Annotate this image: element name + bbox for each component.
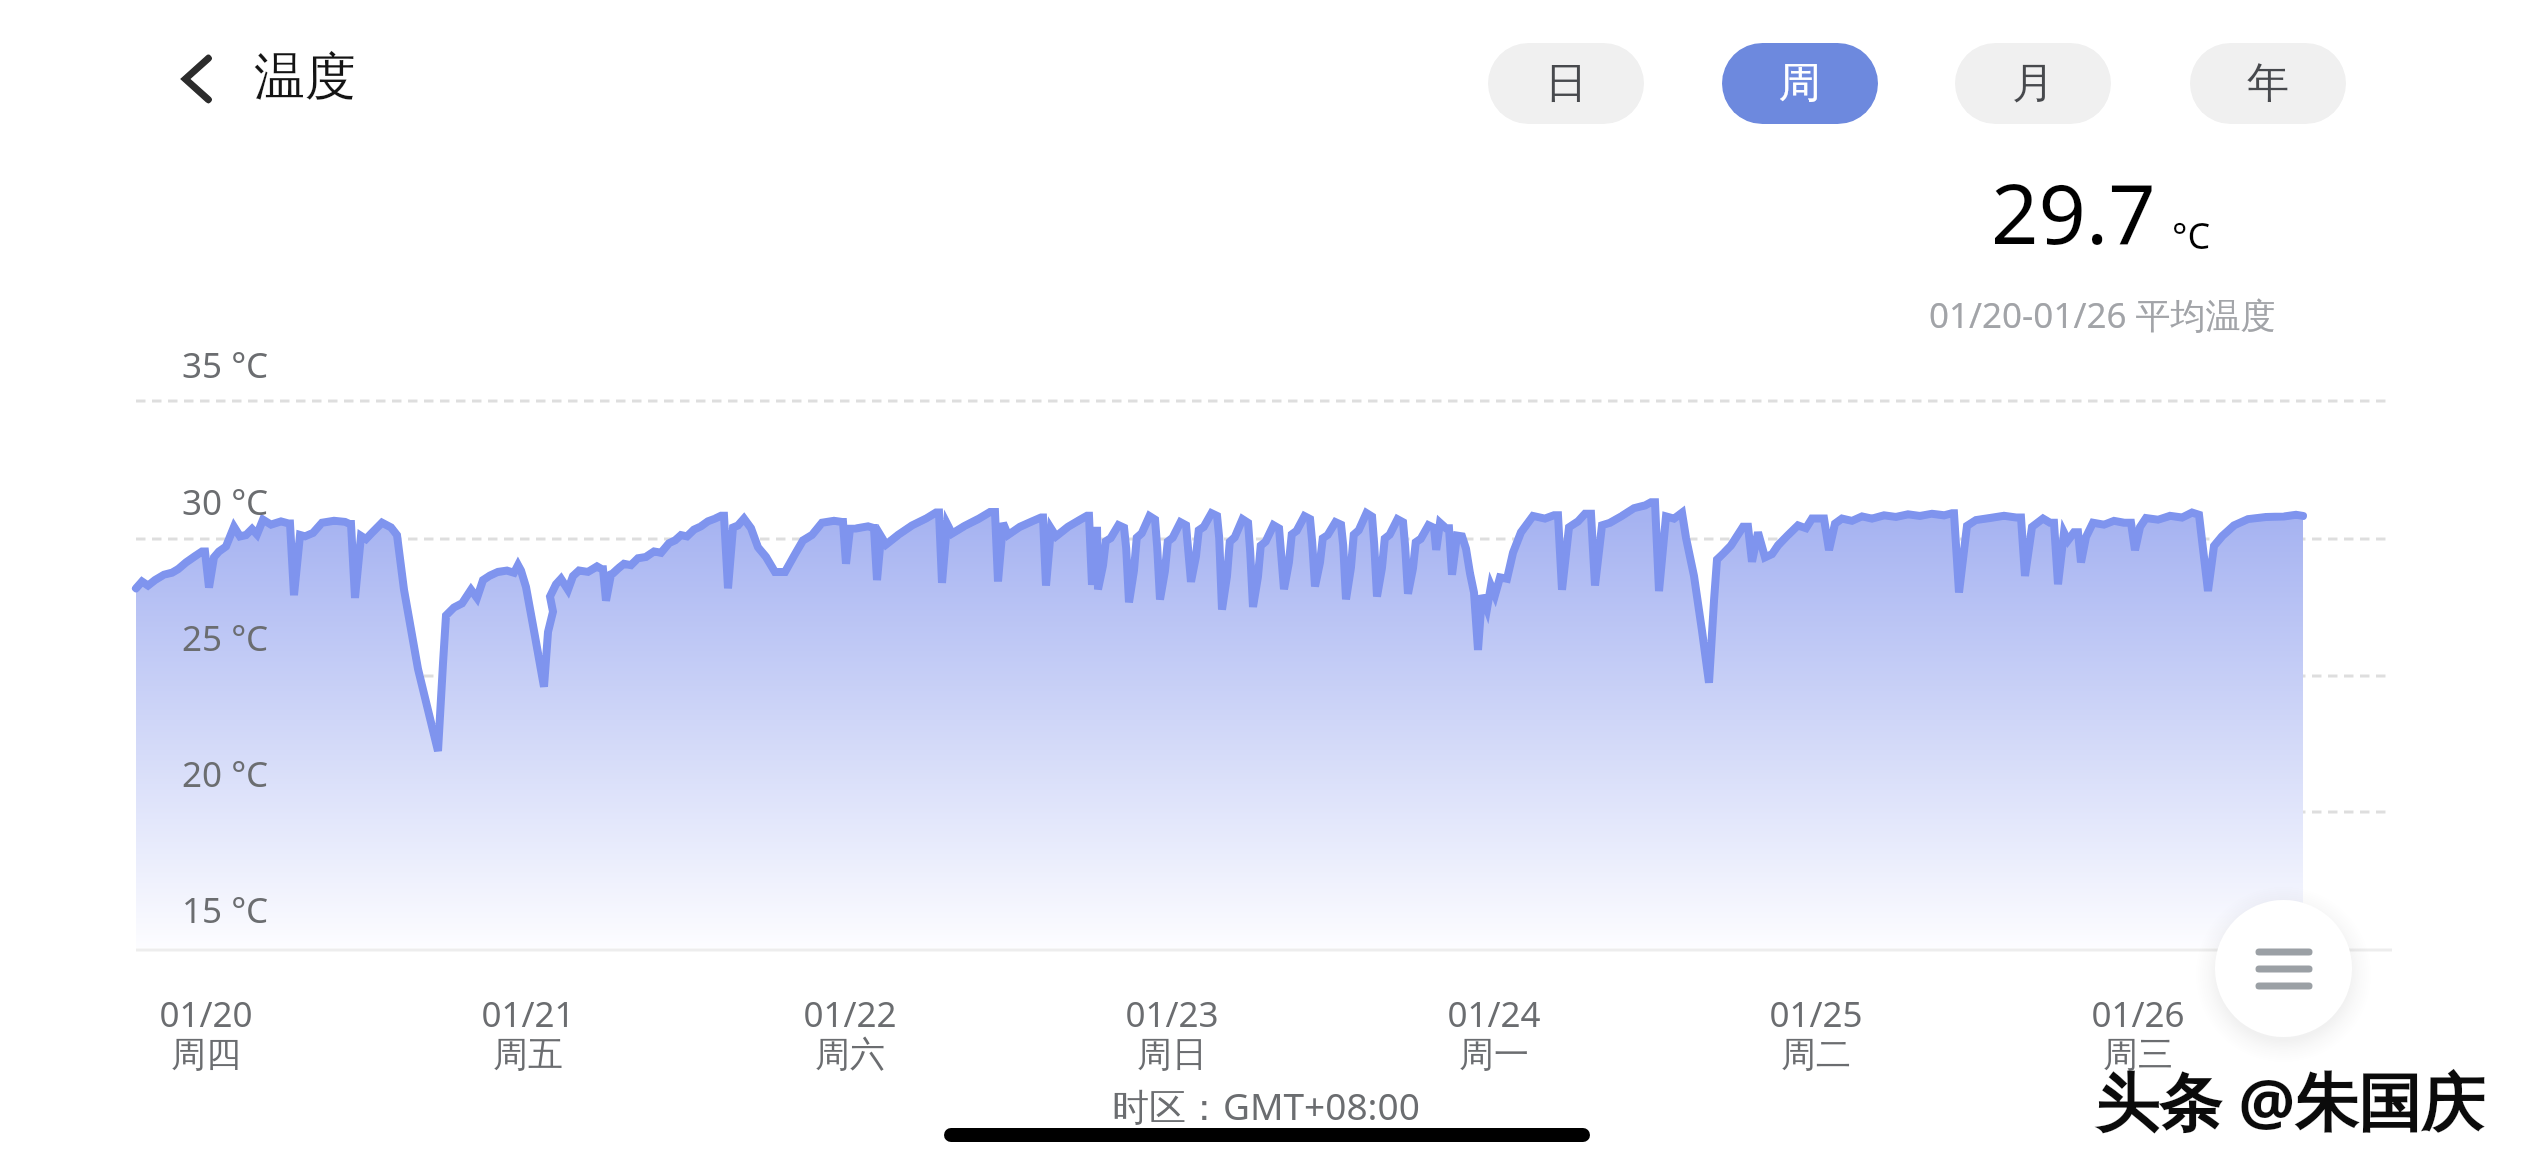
button[interactable]: Menu xyxy=(2215,900,2352,1037)
staticText: 头条 @朱国庆 xyxy=(2096,1058,2484,1144)
staticText: 01/20-01/26 平均温度 xyxy=(1929,291,2276,339)
staticText: 周日 xyxy=(1137,1032,1207,1076)
staticText: 01/26 xyxy=(2091,990,2185,1038)
staticText: 01/21 xyxy=(481,990,575,1038)
button[interactable]: 周 xyxy=(1722,43,1878,124)
staticText: 周六 xyxy=(815,1032,885,1076)
staticText: 时区：GMT+08:00 xyxy=(1112,1080,1420,1131)
button[interactable]: 月 xyxy=(1955,43,2111,124)
staticText: 15 °C xyxy=(182,886,269,934)
staticText: 25 °C xyxy=(182,614,269,662)
staticText: 周二 xyxy=(1781,1032,1851,1076)
button[interactable]: Back xyxy=(152,35,240,123)
staticText: 周三 xyxy=(2103,1032,2173,1076)
staticText: 01/20 xyxy=(159,990,253,1038)
staticText: 年 xyxy=(2247,57,2289,110)
staticText: 01/23 xyxy=(1125,990,1219,1038)
staticText: 30 °C xyxy=(182,478,269,526)
staticText: 35 °C xyxy=(182,341,269,389)
staticText: 周 xyxy=(1779,57,1821,110)
staticText: 周一 xyxy=(1459,1032,1529,1076)
staticText: 月 xyxy=(2012,57,2054,110)
staticText: 01/25 xyxy=(1769,990,1863,1038)
staticText: °C xyxy=(2172,211,2211,260)
staticText: 29.7 xyxy=(1991,155,2156,268)
staticText: 日 xyxy=(1545,57,1587,110)
staticText: 20 °C xyxy=(182,750,269,798)
staticText: 01/24 xyxy=(1447,990,1541,1038)
button[interactable]: 日 xyxy=(1488,43,1644,124)
staticText: 温度 xyxy=(254,45,356,109)
staticText: 01/22 xyxy=(803,990,897,1038)
button[interactable]: 年 xyxy=(2190,43,2346,124)
staticText: 周五 xyxy=(493,1032,563,1076)
staticText: 周四 xyxy=(171,1032,241,1076)
